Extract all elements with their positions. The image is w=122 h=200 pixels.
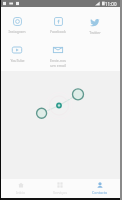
other: Email — [53, 45, 63, 55]
staticText: Contacto — [92, 190, 108, 195]
staticText: YouTube — [10, 58, 25, 63]
staticText: Facebook — [50, 29, 66, 34]
staticText: Twitter — [89, 30, 101, 35]
other: Instagram — [13, 17, 22, 26]
staticText: 11:00 — [105, 1, 117, 7]
button[interactable]: Serviços — [40, 179, 80, 198]
staticText: Início — [16, 190, 26, 195]
button[interactable]: Email — [38, 41, 78, 70]
staticText: Serviços — [53, 190, 67, 195]
other: YouTube — [12, 45, 22, 55]
other: Twitter — [90, 17, 100, 27]
button[interactable]: YouTube — [0, 41, 37, 65]
button[interactable]: Instagram — [0, 13, 37, 36]
staticText: Envie-nos um email — [50, 58, 66, 68]
button[interactable]: Início — [1, 179, 40, 198]
button[interactable]: Twitter — [75, 13, 115, 37]
staticText: Instagram — [8, 29, 26, 34]
button[interactable]: Contacto — [80, 179, 120, 198]
other: Facebook — [54, 17, 63, 26]
button[interactable]: Facebook — [38, 13, 78, 36]
